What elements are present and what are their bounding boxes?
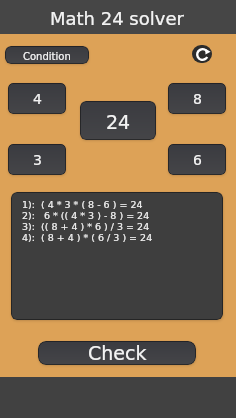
staticText: Check — [88, 342, 147, 364]
button[interactable]: 8 — [168, 83, 226, 114]
staticText: 3 — [33, 152, 42, 168]
button[interactable]: Check — [38, 341, 196, 365]
button[interactable]: 24 — [80, 101, 156, 140]
staticText: Condition — [23, 51, 71, 63]
staticText: Math 24 solver — [50, 8, 184, 29]
button[interactable]: 6 — [168, 144, 226, 175]
staticText: 24 — [106, 111, 131, 133]
staticText: 3): (( 8 + 4 ) * 6 ) / 3 = 24 — [22, 221, 150, 232]
staticText: 2): 6 * (( 4 * 3 ) - 8 ) = 24 — [22, 210, 150, 221]
staticText: 8 — [193, 91, 202, 107]
button[interactable]: 3 — [8, 144, 66, 175]
staticText: 6 — [193, 152, 202, 168]
button[interactable]: Condition — [5, 46, 89, 64]
button[interactable]: Refresh — [192, 45, 212, 63]
button[interactable]: 4 — [8, 83, 66, 114]
staticText: 1): ( 4 * 3 * ( 8 - 6 ) = 24 — [22, 199, 143, 210]
staticText: 4): ( 8 + 4 ) * ( 6 / 3 ) = 24 — [22, 232, 153, 243]
staticText: 4 — [33, 91, 42, 107]
